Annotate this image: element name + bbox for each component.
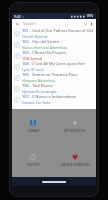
button[interactable]: 104 xyxy=(12,61,96,72)
button[interactable]: Clear xyxy=(82,21,88,27)
staticText: Hymnes Et Louanges xyxy=(22,89,57,94)
staticText: 103 xyxy=(22,50,29,55)
staticText: 106 xyxy=(22,83,29,88)
staticText: 105 xyxy=(22,72,29,77)
button[interactable]: 105 xyxy=(12,72,96,83)
staticText: 9:42 xyxy=(14,14,21,19)
staticText: - Somos un Pequeno Paso xyxy=(30,72,78,77)
staticText: 85% xyxy=(87,14,94,18)
staticText: 107 xyxy=(22,94,29,99)
staticText: - Tedi Nuevo xyxy=(30,83,53,88)
staticText: Himpuns Adventista xyxy=(22,78,56,83)
staticText: Search xyxy=(23,21,82,26)
staticText: MY FAVORITES xyxy=(64,129,86,133)
button[interactable]: 102 xyxy=(12,39,96,50)
staticText: HISTORY xyxy=(27,163,40,167)
button[interactable]: 106 xyxy=(12,83,96,94)
staticText: 104 xyxy=(22,61,29,66)
staticText: - I Cast All My Cares upon Him xyxy=(30,61,85,66)
staticText: - Il Nuovo e Indipendente xyxy=(30,94,77,99)
staticText: 101 xyxy=(22,28,29,33)
button[interactable]: Voice search xyxy=(88,21,94,27)
staticText: Lyric Of Louis xyxy=(22,67,45,72)
staticText: - I Need the Prayers xyxy=(30,50,67,55)
button[interactable]: Back xyxy=(14,20,21,27)
button[interactable]: 101 xyxy=(12,28,96,39)
staticText: Church Hymnal xyxy=(22,34,48,39)
staticText: SDA Hymnal xyxy=(22,56,43,61)
staticText: 102 xyxy=(22,39,29,44)
staticText: Cantate Cui Testo xyxy=(22,100,51,105)
button[interactable]: 103 xyxy=(12,50,96,61)
button[interactable]: LIBRARY xyxy=(12,109,54,143)
staticText: Nuevo Himnario Adventista xyxy=(22,45,68,50)
button[interactable]: MY FAVORITES xyxy=(54,109,96,143)
staticText: - Hijo del Viento xyxy=(30,39,59,44)
button[interactable]: 107 xyxy=(12,94,96,105)
staticText: LIBRARY xyxy=(27,129,40,133)
button[interactable]: HISTORY xyxy=(12,143,54,177)
button[interactable]: MAKE A DONATION xyxy=(54,143,96,177)
staticText: MAKE A DONATION xyxy=(61,163,90,167)
staticText: - God of Our Fathers Known of Old xyxy=(30,28,94,33)
